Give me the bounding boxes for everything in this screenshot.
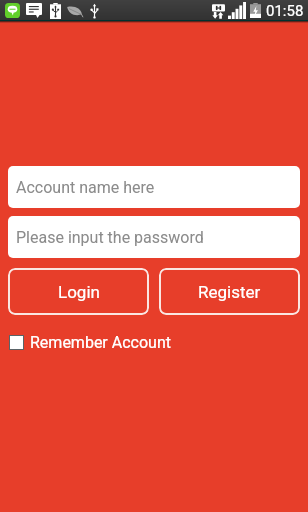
button[interactable]: Register xyxy=(159,268,300,315)
button[interactable]: Login xyxy=(8,268,149,315)
staticText: Please input the password xyxy=(16,228,204,247)
staticText: Register xyxy=(198,282,261,302)
other: Signal strength xyxy=(228,2,246,19)
button[interactable]: Please input the password xyxy=(8,216,300,258)
other: Charging over USB xyxy=(50,3,61,19)
staticText: 01:58 xyxy=(266,2,304,20)
staticText: Account name here xyxy=(16,178,155,197)
staticText: Login xyxy=(58,282,100,302)
button[interactable]: Remember Account xyxy=(9,333,171,352)
other: LINE message xyxy=(5,3,20,18)
other: Battery charging xyxy=(250,3,261,18)
other: New SMS xyxy=(26,3,42,18)
other: USB connected xyxy=(90,3,99,19)
other: Power saving xyxy=(67,5,83,17)
staticText: Remember Account xyxy=(30,333,171,352)
other: HSPA data xyxy=(212,3,225,19)
button[interactable]: Account name here xyxy=(8,166,300,208)
